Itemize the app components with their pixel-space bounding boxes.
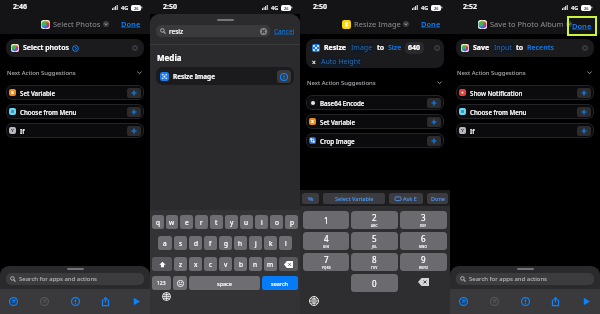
button[interactable]: 5	[351, 232, 398, 250]
button[interactable]: 6	[400, 232, 447, 250]
button[interactable]: Choose from Menu	[6, 104, 144, 119]
button[interactable]: Run	[129, 294, 144, 309]
button[interactable]: Share	[98, 294, 113, 309]
button[interactable]: Automations	[37, 294, 52, 309]
button[interactable]: 9	[400, 253, 447, 271]
button[interactable]: l	[279, 236, 292, 250]
button[interactable]: Add action	[127, 88, 141, 98]
button[interactable]: 8	[351, 253, 398, 271]
button[interactable]: g	[219, 236, 232, 250]
button[interactable]: n	[249, 257, 262, 271]
button[interactable]: c	[204, 257, 217, 271]
button[interactable]: Next Action Suggestions	[457, 67, 593, 78]
button[interactable]: 2	[351, 211, 398, 229]
button[interactable]: q	[152, 215, 164, 229]
button[interactable]: Clear text	[260, 28, 267, 35]
button[interactable]: Add action	[577, 126, 591, 136]
button[interactable]: t	[210, 215, 223, 229]
button[interactable]: x	[189, 257, 202, 271]
button[interactable]: Add action	[427, 117, 441, 127]
button[interactable]: Next Action Suggestions	[7, 67, 143, 78]
button[interactable]: d	[189, 236, 202, 250]
button[interactable]: 7	[303, 253, 349, 271]
button[interactable]: %	[302, 193, 319, 204]
button[interactable]: Automations	[487, 294, 502, 309]
button[interactable]: 4	[303, 232, 349, 250]
staticText: r	[200, 218, 203, 227]
button[interactable]: Delete	[400, 274, 447, 290]
button[interactable]: Shift	[152, 257, 172, 271]
button[interactable]: Search for apps and actions	[6, 273, 144, 285]
button[interactable]: Next Action Suggestions	[307, 77, 443, 88]
button[interactable]: Add action	[577, 88, 591, 98]
button[interactable]: Done	[121, 19, 141, 29]
button[interactable]: Save	[456, 39, 594, 57]
button[interactable]: Emoji	[173, 276, 187, 290]
button[interactable]: o	[270, 215, 283, 229]
button[interactable]: Details	[518, 294, 533, 309]
button[interactable]: space	[189, 276, 260, 290]
button[interactable]: 1	[303, 211, 349, 229]
button[interactable]: w	[166, 215, 178, 229]
button[interactable]: 3	[400, 211, 447, 229]
button[interactable]: Done	[427, 193, 448, 204]
button[interactable]: If	[456, 123, 594, 138]
button[interactable]: Share	[548, 294, 563, 309]
button[interactable]: x	[306, 114, 444, 129]
button[interactable]: f	[204, 236, 217, 250]
button[interactable]: Add action	[427, 98, 441, 108]
button[interactable]: Show Notification	[456, 85, 594, 100]
button[interactable]: u	[240, 215, 253, 229]
button[interactable]: s	[174, 236, 187, 250]
button[interactable]: Add action	[577, 107, 591, 117]
button[interactable]: Change keyboard	[309, 296, 319, 306]
staticText: g	[224, 239, 228, 248]
button[interactable]: k	[264, 236, 277, 250]
button[interactable]: Backspace	[279, 257, 298, 271]
button[interactable]: j	[249, 236, 262, 250]
staticText: resiz	[169, 27, 184, 36]
button[interactable]: h	[234, 236, 247, 250]
button[interactable]: b	[234, 257, 247, 271]
button[interactable]: Details	[68, 294, 83, 309]
button[interactable]: Select Variable	[323, 193, 385, 204]
button[interactable]: Crop Image	[306, 133, 444, 148]
button[interactable]: resiz	[156, 25, 270, 37]
button[interactable]: Cancel	[274, 27, 295, 36]
button[interactable]: v	[219, 257, 232, 271]
button[interactable]: Done	[421, 19, 441, 29]
button[interactable]: Done	[567, 16, 597, 36]
button[interactable]: Change keyboard	[162, 292, 171, 301]
staticText: Crop Image	[320, 137, 355, 145]
button[interactable]: p	[285, 215, 298, 229]
button[interactable]: If	[6, 123, 144, 138]
button[interactable]: Run	[579, 294, 594, 309]
button[interactable]: y	[225, 215, 238, 229]
button[interactable]: a	[158, 236, 172, 250]
button[interactable]: Shortcuts	[456, 294, 471, 309]
button[interactable]: e	[180, 215, 193, 229]
button[interactable]: Add action	[127, 107, 141, 117]
button[interactable]: z	[174, 257, 187, 271]
button[interactable]: Shortcuts	[6, 294, 21, 309]
staticText: 26	[134, 6, 139, 11]
button[interactable]: Add action	[127, 126, 141, 136]
button[interactable]: Search for apps and actions	[456, 273, 594, 285]
button[interactable]: Info	[277, 70, 291, 83]
button[interactable]: Base64 Encode	[306, 95, 444, 110]
button[interactable]: Select photos	[6, 39, 144, 57]
button[interactable]: r	[195, 215, 208, 229]
button[interactable]: Resize Image	[156, 67, 294, 85]
staticText: 2:50	[313, 2, 327, 12]
button[interactable]: 0	[351, 274, 398, 292]
button[interactable]: Resize	[306, 39, 444, 68]
button[interactable]: search	[262, 276, 298, 290]
button[interactable]: m	[264, 257, 277, 271]
button[interactable]: Choose from Menu	[456, 104, 594, 119]
button[interactable]: 123	[152, 276, 171, 290]
button[interactable]: x	[6, 85, 144, 100]
staticText: h	[238, 239, 243, 248]
button[interactable]: Ask E	[389, 193, 423, 204]
button[interactable]: Add action	[427, 136, 441, 146]
button[interactable]: i	[255, 215, 268, 229]
